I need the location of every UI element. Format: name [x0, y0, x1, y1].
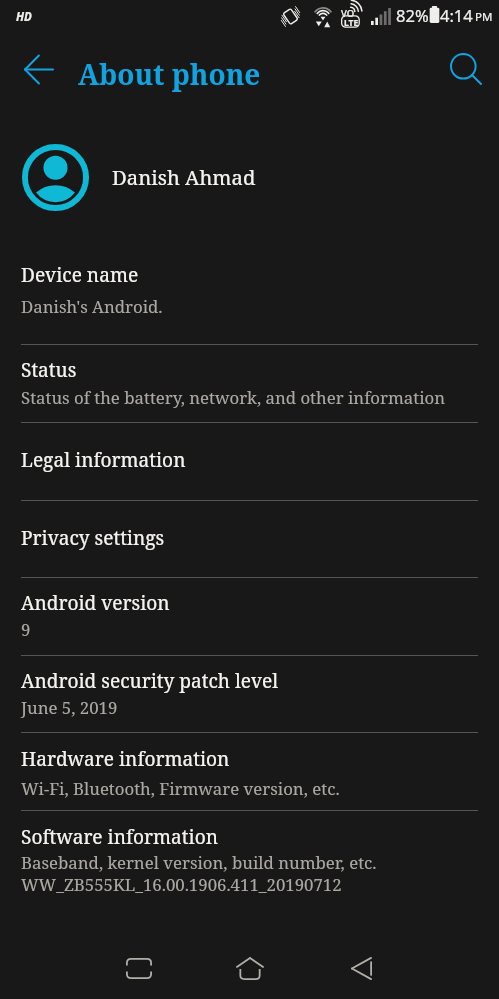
staticText: Status: [21, 357, 77, 383]
button[interactable]: [0, 345, 499, 422]
staticText: Status of the battery, network, and othe…: [21, 386, 446, 409]
staticText: 82%: [396, 4, 429, 26]
staticText: Software information: [21, 824, 218, 850]
staticText: Danish Ahmad: [112, 163, 256, 191]
button[interactable]: [0, 811, 499, 905]
staticText: About phone: [78, 55, 261, 93]
button[interactable]: Back: [337, 944, 385, 992]
button[interactable]: [0, 501, 499, 577]
staticText: LTE: [344, 17, 359, 29]
staticText: Device name: [21, 262, 139, 288]
staticText: Privacy settings: [21, 525, 165, 551]
staticText: Danish's Android.: [21, 295, 163, 318]
staticText: PM: [475, 9, 493, 25]
button[interactable]: [0, 656, 499, 732]
staticText: Android version: [21, 590, 170, 616]
staticText: 9: [21, 618, 31, 641]
staticText: June 5, 2019: [21, 696, 118, 719]
staticText: HD: [16, 9, 32, 25]
staticText: Wi-Fi, Bluetooth, Firmware version, etc.: [21, 777, 340, 800]
staticText: Android security patch level: [21, 668, 279, 694]
staticText: Hardware information: [21, 746, 230, 772]
button[interactable]: [0, 578, 499, 655]
staticText: VO: [341, 7, 355, 20]
staticText: Baseband, kernel version, build number, …: [21, 851, 377, 896]
button[interactable]: Recent apps: [115, 944, 163, 992]
button[interactable]: Navigate up: [13, 43, 65, 95]
button[interactable]: [0, 423, 499, 500]
button[interactable]: Danish Ahmad: [0, 131, 499, 223]
button[interactable]: [0, 733, 499, 810]
button[interactable]: [0, 244, 499, 344]
button[interactable]: Home: [226, 944, 274, 992]
staticText: 4:14: [440, 4, 473, 26]
button[interactable]: Search: [440, 43, 492, 95]
staticText: Legal information: [21, 447, 186, 473]
